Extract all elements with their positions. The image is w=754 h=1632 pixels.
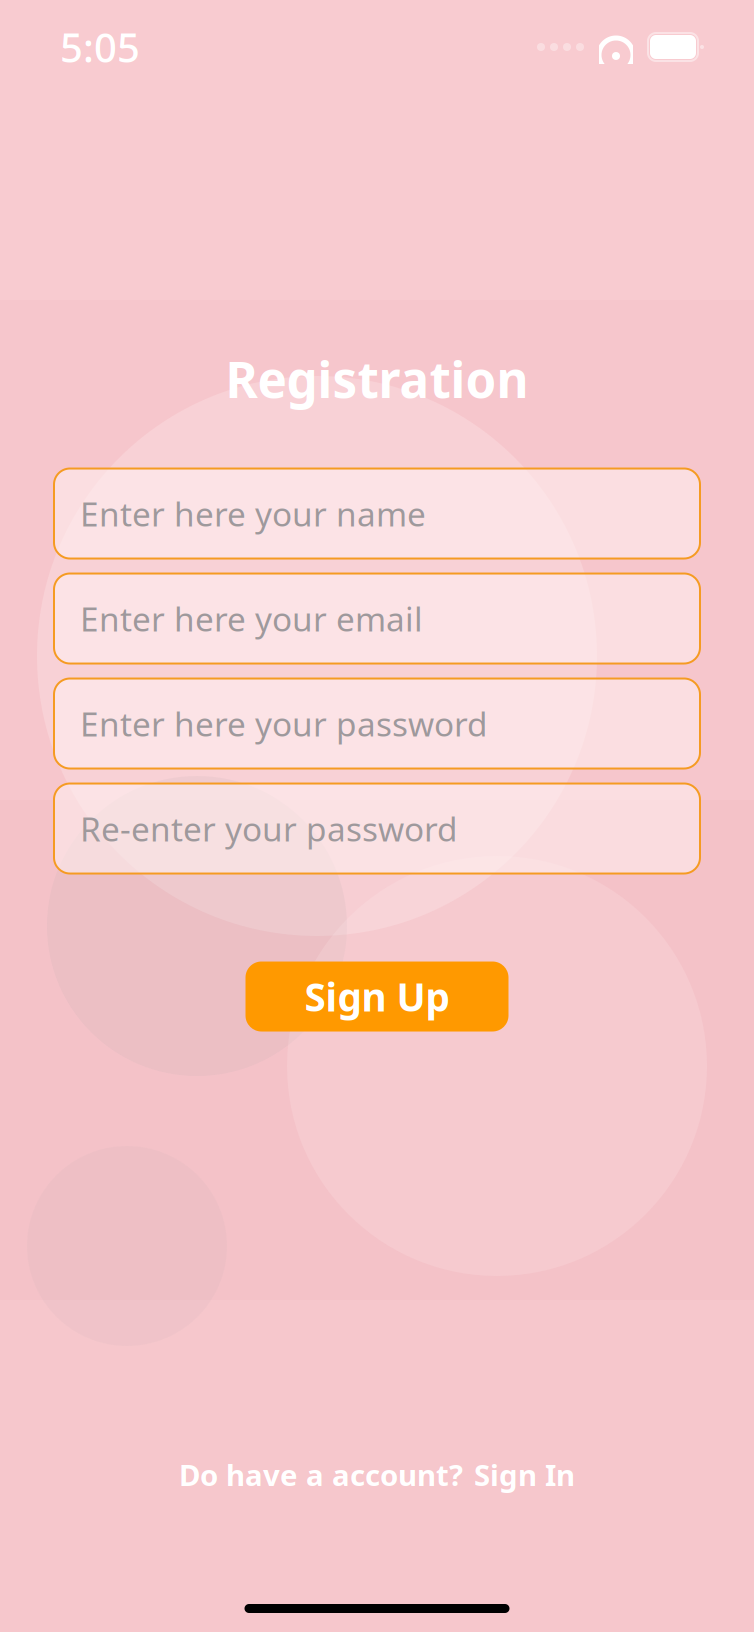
staticText: Registration [225, 346, 528, 411]
staticText: Sign Up [304, 971, 449, 1022]
staticText: 5:05 [60, 20, 140, 73]
button[interactable]: Enter here your email [54, 573, 700, 663]
staticText: Re-enter your password [80, 806, 458, 851]
button[interactable]: Do have a account? [159, 1445, 595, 1504]
staticText: Sign In [474, 1455, 575, 1494]
button[interactable]: Sign Up [245, 961, 508, 1031]
staticText: Do have a account? [179, 1455, 463, 1494]
button[interactable]: Enter here your name [54, 468, 700, 558]
button[interactable]: Enter here your password [54, 678, 700, 768]
staticText: Enter here your email [80, 596, 423, 641]
button[interactable]: Re-enter your password [54, 783, 700, 873]
staticText: Enter here your name [80, 491, 426, 536]
staticText: Enter here your password [80, 701, 488, 746]
